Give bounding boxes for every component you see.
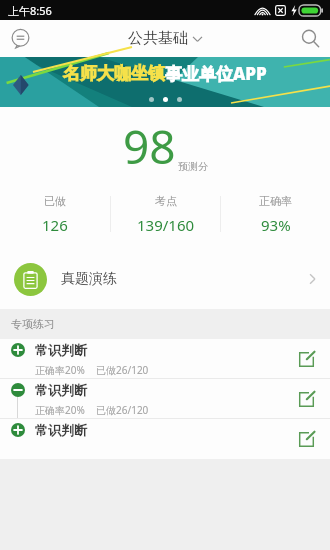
staticText: 98 [123,115,176,178]
staticText: 常识判断 [35,382,87,398]
staticText: 预测分 [178,160,208,173]
button[interactable]: Promotion banner [0,57,330,107]
staticText: 专项练习 [11,317,55,331]
button[interactable]: 正确率 [221,185,330,243]
button[interactable]: 真题演练 [0,249,330,309]
button[interactable]: 公共基础 [128,29,202,48]
staticText: 公共基础 [128,29,188,48]
staticText: 126 [42,215,68,235]
staticText: 上午8:56 [8,3,52,18]
button[interactable]: Collapse [11,383,25,397]
staticText: 正确率20% [35,403,85,417]
staticText: 139/160 [137,215,195,235]
staticText: 常识判断 [35,422,87,438]
staticText: 考点 [155,194,177,208]
button[interactable]: Expand [0,339,330,379]
button[interactable]: Edit [293,346,319,372]
staticText: 真题演练 [61,270,117,288]
staticText: 事业单位APP [165,62,267,85]
staticText: 常识判断 [35,342,87,358]
button[interactable]: Search [290,20,330,57]
staticText: 名师大咖坐镇 [63,63,165,84]
button[interactable]: Edit [293,386,319,412]
button[interactable]: 考点 [111,185,220,243]
staticText: 已做 [44,194,66,208]
button[interactable]: Collapse [0,379,330,419]
staticText: 93% [261,215,291,235]
staticText: 正确率20% [35,363,85,377]
button[interactable]: 已做 [0,185,110,243]
staticText: 已做26/120 [96,363,149,377]
button[interactable]: Expand [11,343,25,357]
staticText: 正确率 [259,194,292,208]
button[interactable]: Edit [293,426,319,452]
button[interactable]: Messages [0,20,40,57]
button[interactable]: Expand [11,423,25,437]
button[interactable]: Expand [0,419,330,459]
staticText: 已做26/120 [96,403,149,417]
